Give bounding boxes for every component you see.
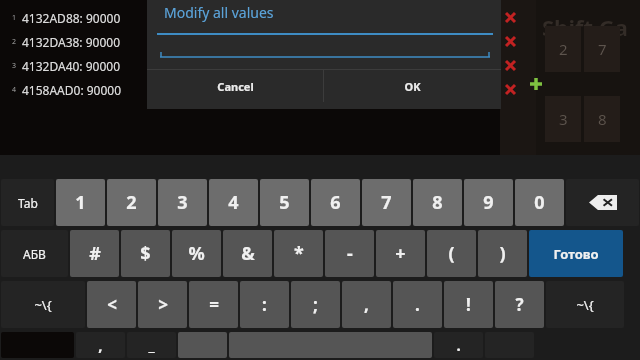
staticText: : — [262, 293, 267, 316]
button[interactable]: 0 — [515, 179, 564, 226]
button[interactable]: 3 — [12, 56, 121, 74]
button[interactable]: + — [376, 230, 425, 277]
button[interactable]: 4 — [209, 179, 258, 226]
button[interactable]: & — [223, 230, 272, 277]
staticText: 4132AD88: 90000 — [22, 10, 121, 26]
button[interactable]: 1 — [56, 179, 105, 226]
button[interactable]: 3 — [158, 179, 207, 226]
staticText: OK — [404, 79, 421, 94]
button[interactable]: _ — [127, 332, 176, 358]
button[interactable]: 8 — [413, 179, 462, 226]
staticText: . — [456, 335, 461, 355]
button[interactable]: Remove entry 3 — [503, 58, 518, 73]
button[interactable]: Cancel — [147, 70, 323, 102]
staticText: ) — [499, 241, 506, 266]
staticText: 4158AAD0: 90000 — [22, 82, 122, 98]
button[interactable]: 2 — [107, 179, 156, 226]
button[interactable]: Remove entry 1 — [503, 10, 518, 25]
staticText: 7 — [381, 190, 392, 215]
button[interactable]: ; — [291, 281, 340, 328]
button[interactable]: 9 — [464, 179, 513, 226]
staticText: % — [188, 241, 205, 266]
staticText: 3 — [12, 61, 17, 71]
button[interactable]: АБВ — [1, 230, 68, 277]
button[interactable]: 7 — [362, 179, 411, 226]
button[interactable]: 2 — [12, 32, 121, 50]
staticText: 4 — [228, 190, 239, 215]
staticText: & — [241, 241, 255, 266]
staticText: АБВ — [23, 246, 46, 262]
staticText: 2 — [559, 39, 568, 59]
button[interactable]: 5 — [260, 179, 309, 226]
button[interactable]: ! — [444, 281, 493, 328]
button[interactable]: % — [172, 230, 221, 277]
staticText: ? — [515, 293, 524, 316]
button[interactable] — [160, 52, 490, 58]
staticText: 8 — [598, 109, 607, 129]
staticText: 7 — [598, 39, 607, 59]
button[interactable]: Tab — [1, 179, 54, 226]
button[interactable]: : — [240, 281, 289, 328]
button[interactable]: > — [138, 281, 187, 328]
staticText: 1 — [75, 190, 86, 215]
staticText: = — [209, 293, 219, 316]
staticText: 3 — [559, 109, 568, 129]
button[interactable]: < — [87, 281, 136, 328]
button[interactable]: ~\{ — [546, 281, 624, 328]
staticText: 4132DA38: 90000 — [22, 34, 121, 50]
staticText: + — [395, 241, 406, 266]
staticText: _ — [148, 335, 155, 355]
button[interactable]: , — [76, 332, 125, 358]
staticText: > — [158, 293, 168, 316]
staticText: , — [364, 293, 369, 316]
button[interactable]: ? — [495, 281, 544, 328]
staticText: 1 — [12, 13, 17, 23]
button[interactable]: ) — [478, 230, 527, 277]
staticText: 5 — [279, 190, 290, 215]
staticText: * — [294, 241, 304, 266]
staticText: ~\{ — [34, 296, 52, 314]
staticText: Готово — [553, 245, 599, 263]
staticText: . — [415, 293, 420, 316]
staticText: 9 — [483, 190, 494, 215]
button[interactable]: * — [274, 230, 323, 277]
button[interactable]: $ — [121, 230, 170, 277]
staticText: Cancel — [217, 79, 254, 94]
button[interactable]: , — [342, 281, 391, 328]
button[interactable]: # — [70, 230, 119, 277]
staticText: ~\{ — [576, 296, 594, 314]
button[interactable] — [157, 31, 493, 35]
button[interactable]: 1 — [12, 8, 121, 26]
staticText: 8 — [432, 190, 443, 215]
staticText: 0 — [534, 190, 545, 215]
button[interactable]: Готово — [529, 230, 623, 277]
staticText: - — [347, 241, 353, 266]
button[interactable]: Remove entry 4 — [503, 82, 518, 97]
button[interactable]: ~\{ — [1, 281, 85, 328]
staticText: 4132DA40: 90000 — [22, 58, 121, 74]
button[interactable]: - — [325, 230, 374, 277]
button[interactable]: 6 — [311, 179, 360, 226]
button[interactable]: . — [393, 281, 442, 328]
button[interactable]: = — [189, 281, 238, 328]
staticText: Tab — [18, 195, 38, 211]
button[interactable]: Remove entry 2 — [503, 34, 518, 49]
staticText: # — [89, 241, 101, 266]
staticText: Shift Ga — [542, 12, 628, 42]
staticText: < — [107, 293, 117, 316]
button[interactable]: Backspace — [566, 179, 639, 226]
button[interactable]: . — [434, 332, 483, 358]
button[interactable]: OK — [324, 70, 501, 102]
staticText: 2 — [126, 190, 137, 215]
staticText: 3 — [177, 190, 188, 215]
staticText: ! — [466, 293, 471, 316]
staticText: ; — [313, 293, 318, 316]
staticText: ( — [448, 241, 455, 266]
button[interactable]: 4 — [12, 80, 122, 98]
staticText: 6 — [330, 190, 341, 215]
button[interactable]: ( — [427, 230, 476, 277]
